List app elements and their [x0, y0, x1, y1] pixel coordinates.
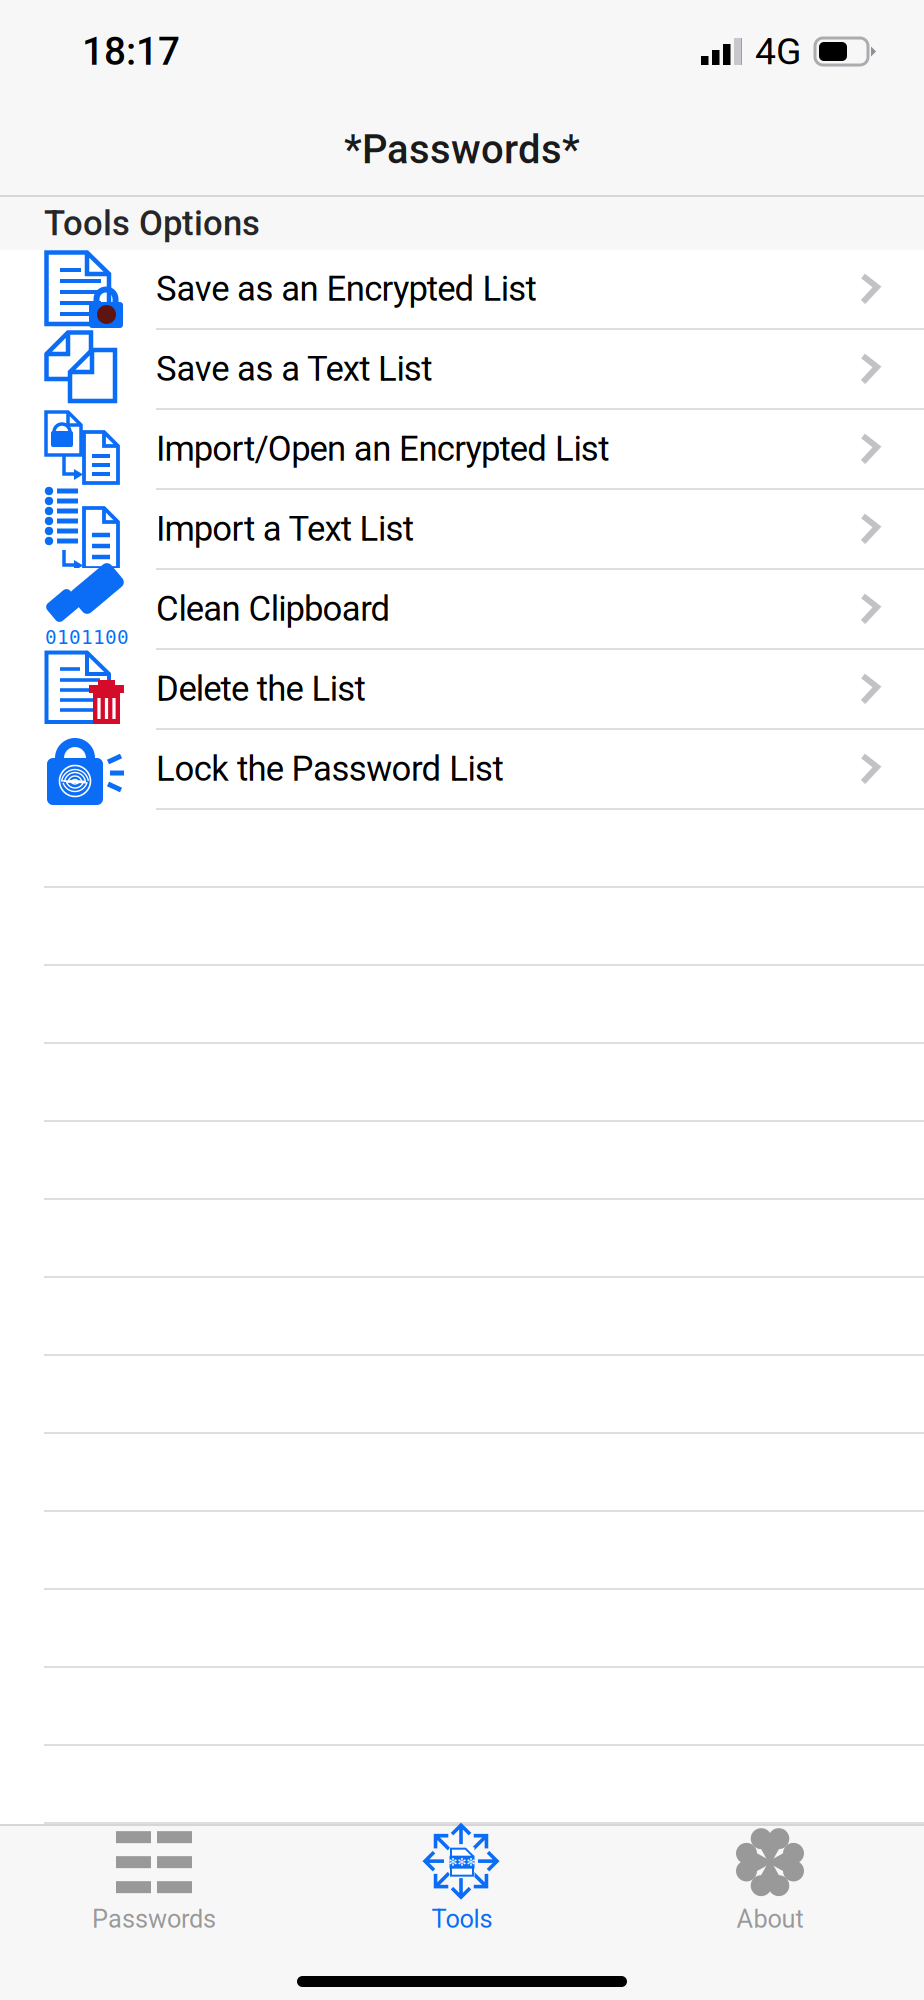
staticText: ✻✻✻: [448, 1856, 475, 1868]
button[interactable]: Save as a Text List: [0, 330, 924, 410]
staticText: 18:17: [82, 29, 180, 74]
staticText: *Passwords*: [344, 126, 580, 173]
button[interactable]: Import a Text List: [0, 490, 924, 570]
button[interactable]: Import/Open an Encrypted List: [0, 410, 924, 490]
button[interactable]: About: [616, 1831, 924, 1933]
staticText: 4G: [755, 30, 801, 73]
staticText: Tools: [431, 1904, 492, 1934]
staticText: Delete the List: [156, 669, 366, 709]
button[interactable]: 0101100: [0, 570, 924, 650]
staticText: About: [736, 1904, 803, 1934]
staticText: Save as a Text List: [156, 349, 432, 389]
button[interactable]: ✻✻✻: [308, 1831, 616, 1933]
staticText: Import/Open an Encrypted List: [156, 429, 609, 469]
button[interactable]: Delete the List: [0, 650, 924, 730]
staticText: Lock the Password List: [156, 749, 503, 789]
staticText: Passwords: [92, 1904, 216, 1934]
staticText: Import a Text List: [156, 509, 414, 549]
staticText: 0101100: [45, 626, 129, 648]
staticText: Clean Clipboard: [156, 589, 391, 629]
staticText: Tools Options: [44, 203, 260, 244]
staticText: Save as an Encrypted List: [156, 269, 537, 309]
button[interactable]: Save as an Encrypted List: [0, 250, 924, 330]
button[interactable]: Lock the Password List: [0, 730, 924, 810]
button[interactable]: Passwords: [0, 1831, 308, 1933]
